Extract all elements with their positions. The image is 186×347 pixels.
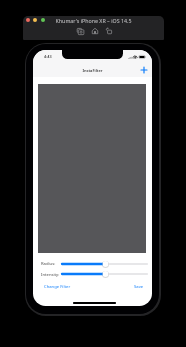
- staticText: 4:43: [44, 54, 52, 59]
- button[interactable]: Rotate: [103, 25, 114, 36]
- button[interactable]: Screenshot: [75, 26, 86, 37]
- button[interactable]: Radius:: [62, 260, 147, 268]
- staticText: Khumar's iPhone XR – iOS 14.5: [23, 17, 164, 24]
- button[interactable]: Home: [89, 25, 100, 36]
- button[interactable]: Change Filter: [44, 284, 71, 290]
- staticText: Intensity:: [41, 272, 60, 278]
- button[interactable]: Save: [134, 284, 144, 290]
- staticText: Radius:: [41, 261, 56, 267]
- staticText: InstaFilter: [33, 68, 152, 73]
- button[interactable]: Add photo: [138, 64, 150, 76]
- button[interactable]: Intensity:: [62, 270, 147, 278]
